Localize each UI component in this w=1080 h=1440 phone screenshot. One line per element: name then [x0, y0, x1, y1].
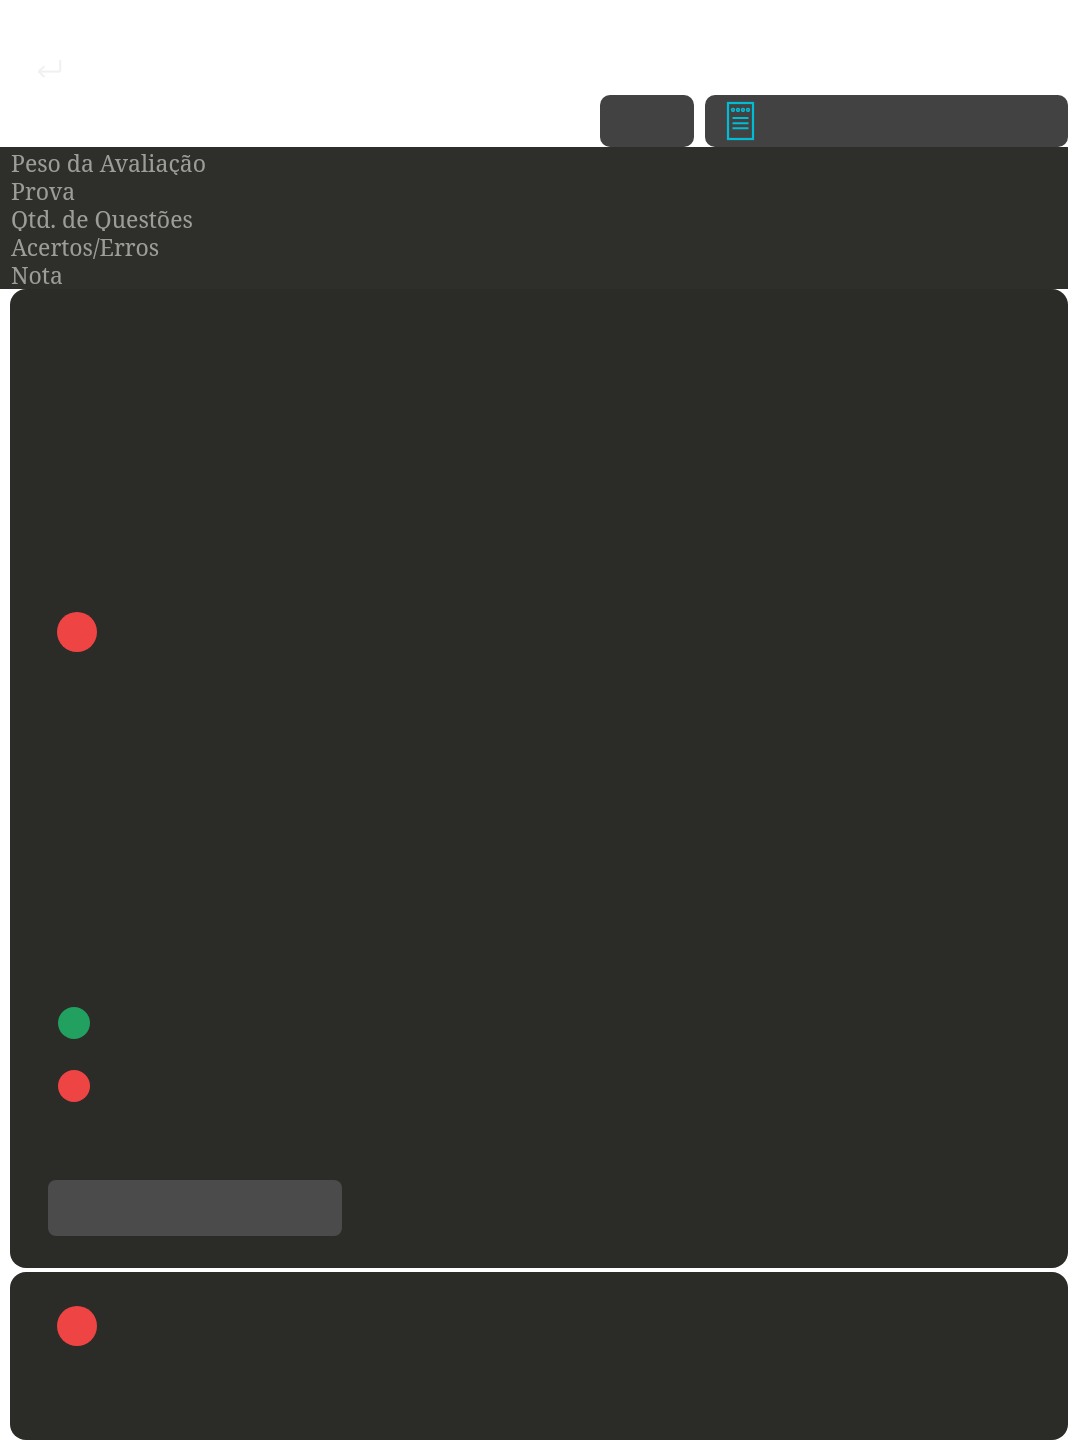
- staticText: Nota: [11, 259, 63, 287]
- staticText: Acertos/Erros: [11, 231, 160, 259]
- staticText: Qtd. de Questões: [11, 203, 193, 231]
- staticText: Prova: [11, 175, 76, 203]
- button[interactable]: Campo de entrada: [10, 289, 1068, 1268]
- staticText: Peso da Avaliação: [11, 147, 206, 175]
- button[interactable]: Opções: [600, 95, 694, 147]
- button[interactable]: Caderno de notas: [705, 95, 1068, 147]
- button[interactable]: Voltar: [30, 50, 66, 86]
- button[interactable]: [10, 1272, 1068, 1440]
